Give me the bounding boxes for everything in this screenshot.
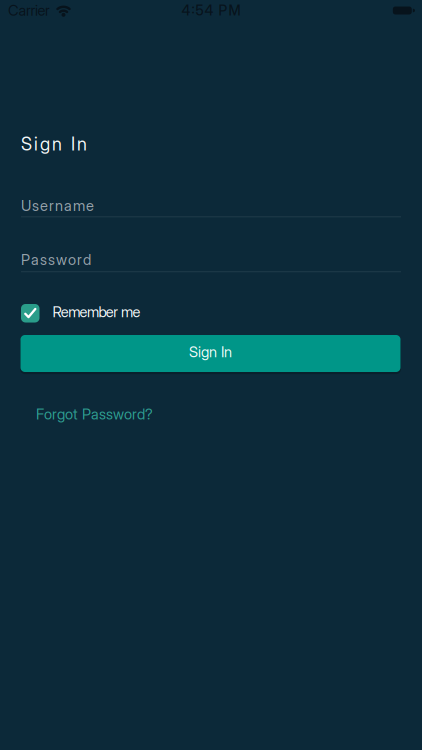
staticText: U s e r n a m e (21, 197, 94, 214)
staticText: Sign In (189, 343, 232, 361)
staticText: S i g n I n (21, 133, 87, 155)
staticText: Carrier (8, 2, 50, 19)
staticText: 4 : 5 4 P M (181, 2, 240, 19)
staticText: P a s s w o r d (21, 251, 91, 269)
staticText: Remember me (52, 303, 140, 321)
button[interactable]: Sign In (20, 335, 400, 372)
button[interactable]: Forgot Password? (36, 405, 153, 423)
staticText: Forgot Password? (36, 405, 153, 423)
button[interactable]: Remember me (21, 304, 140, 322)
